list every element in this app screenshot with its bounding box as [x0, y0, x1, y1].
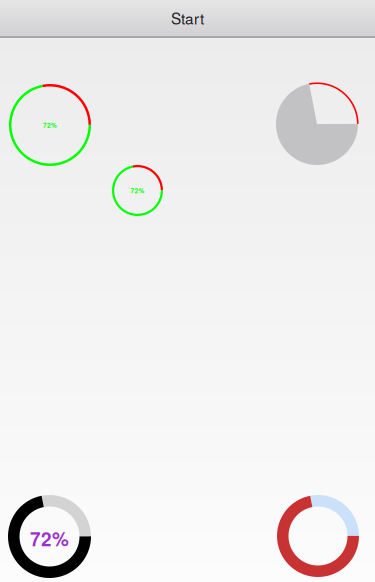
staticText: Start	[171, 7, 204, 29]
staticText: 72%	[130, 186, 144, 195]
staticText: 72%	[30, 525, 69, 552]
staticText: 72%	[43, 120, 57, 130]
